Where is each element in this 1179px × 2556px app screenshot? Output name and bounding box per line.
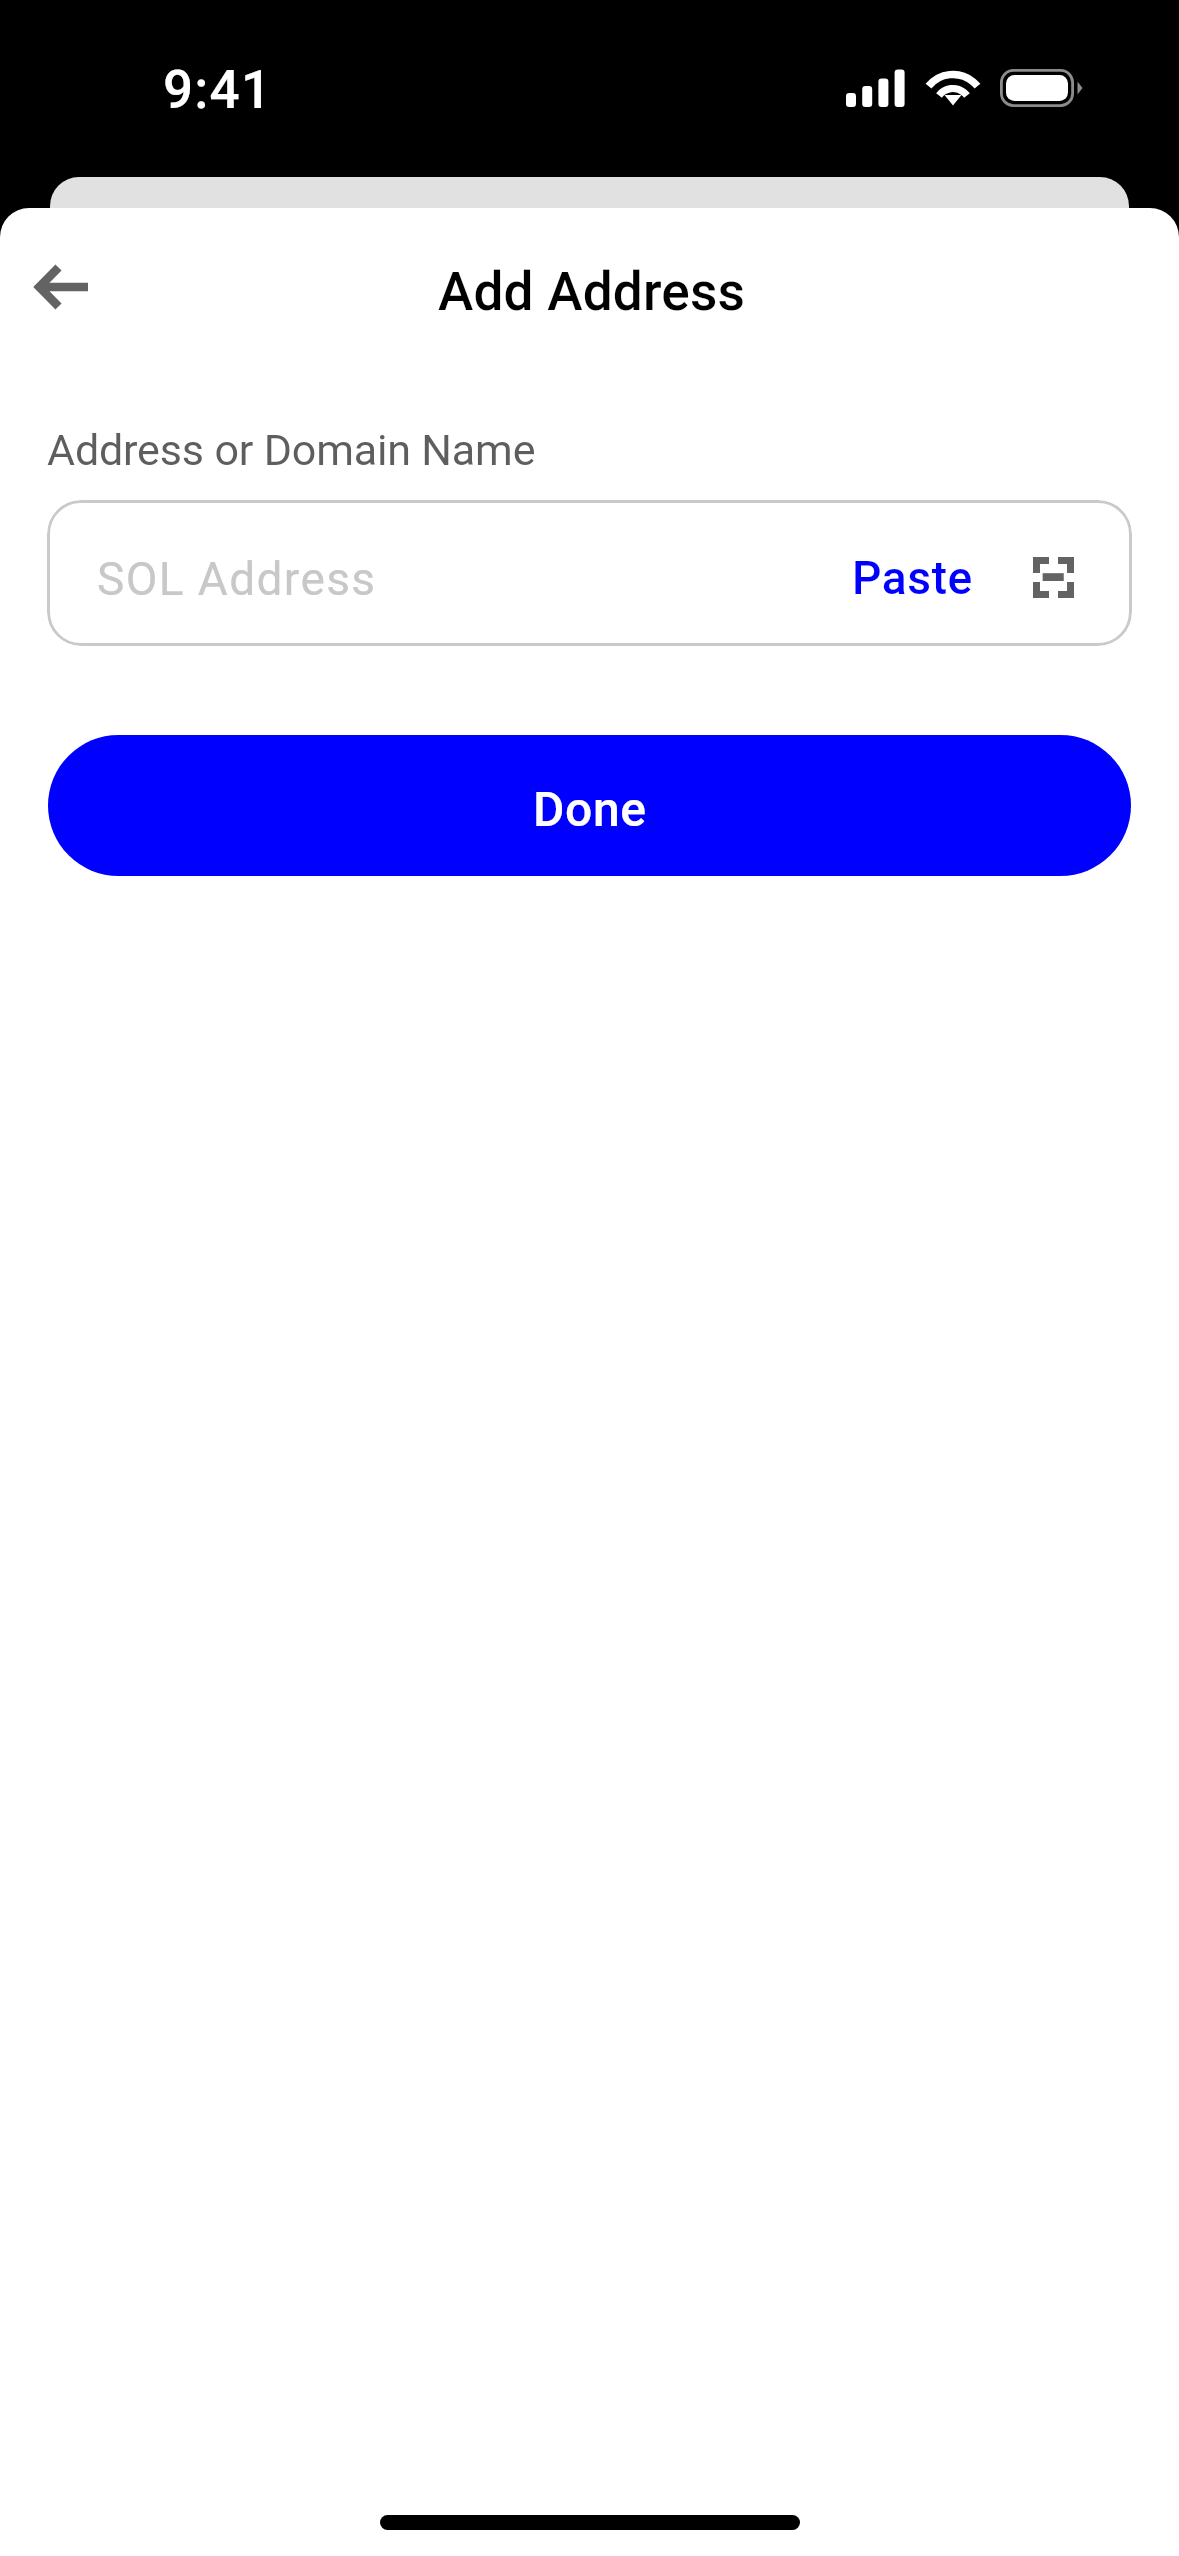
staticText: Paste	[852, 551, 973, 605]
button[interactable]: Done	[48, 735, 1131, 876]
staticText: Address or Domain Name	[47, 425, 536, 475]
button[interactable]: Back	[10, 235, 114, 339]
staticText: SOL Address	[97, 552, 852, 606]
staticText: Add Address	[438, 261, 746, 323]
button[interactable]: Scan QR code	[1025, 549, 1081, 605]
button[interactable]: SOL Address	[47, 500, 1132, 646]
staticText: Done	[533, 781, 647, 837]
button[interactable]: Paste	[852, 500, 973, 646]
staticText: 9:41	[163, 59, 273, 121]
